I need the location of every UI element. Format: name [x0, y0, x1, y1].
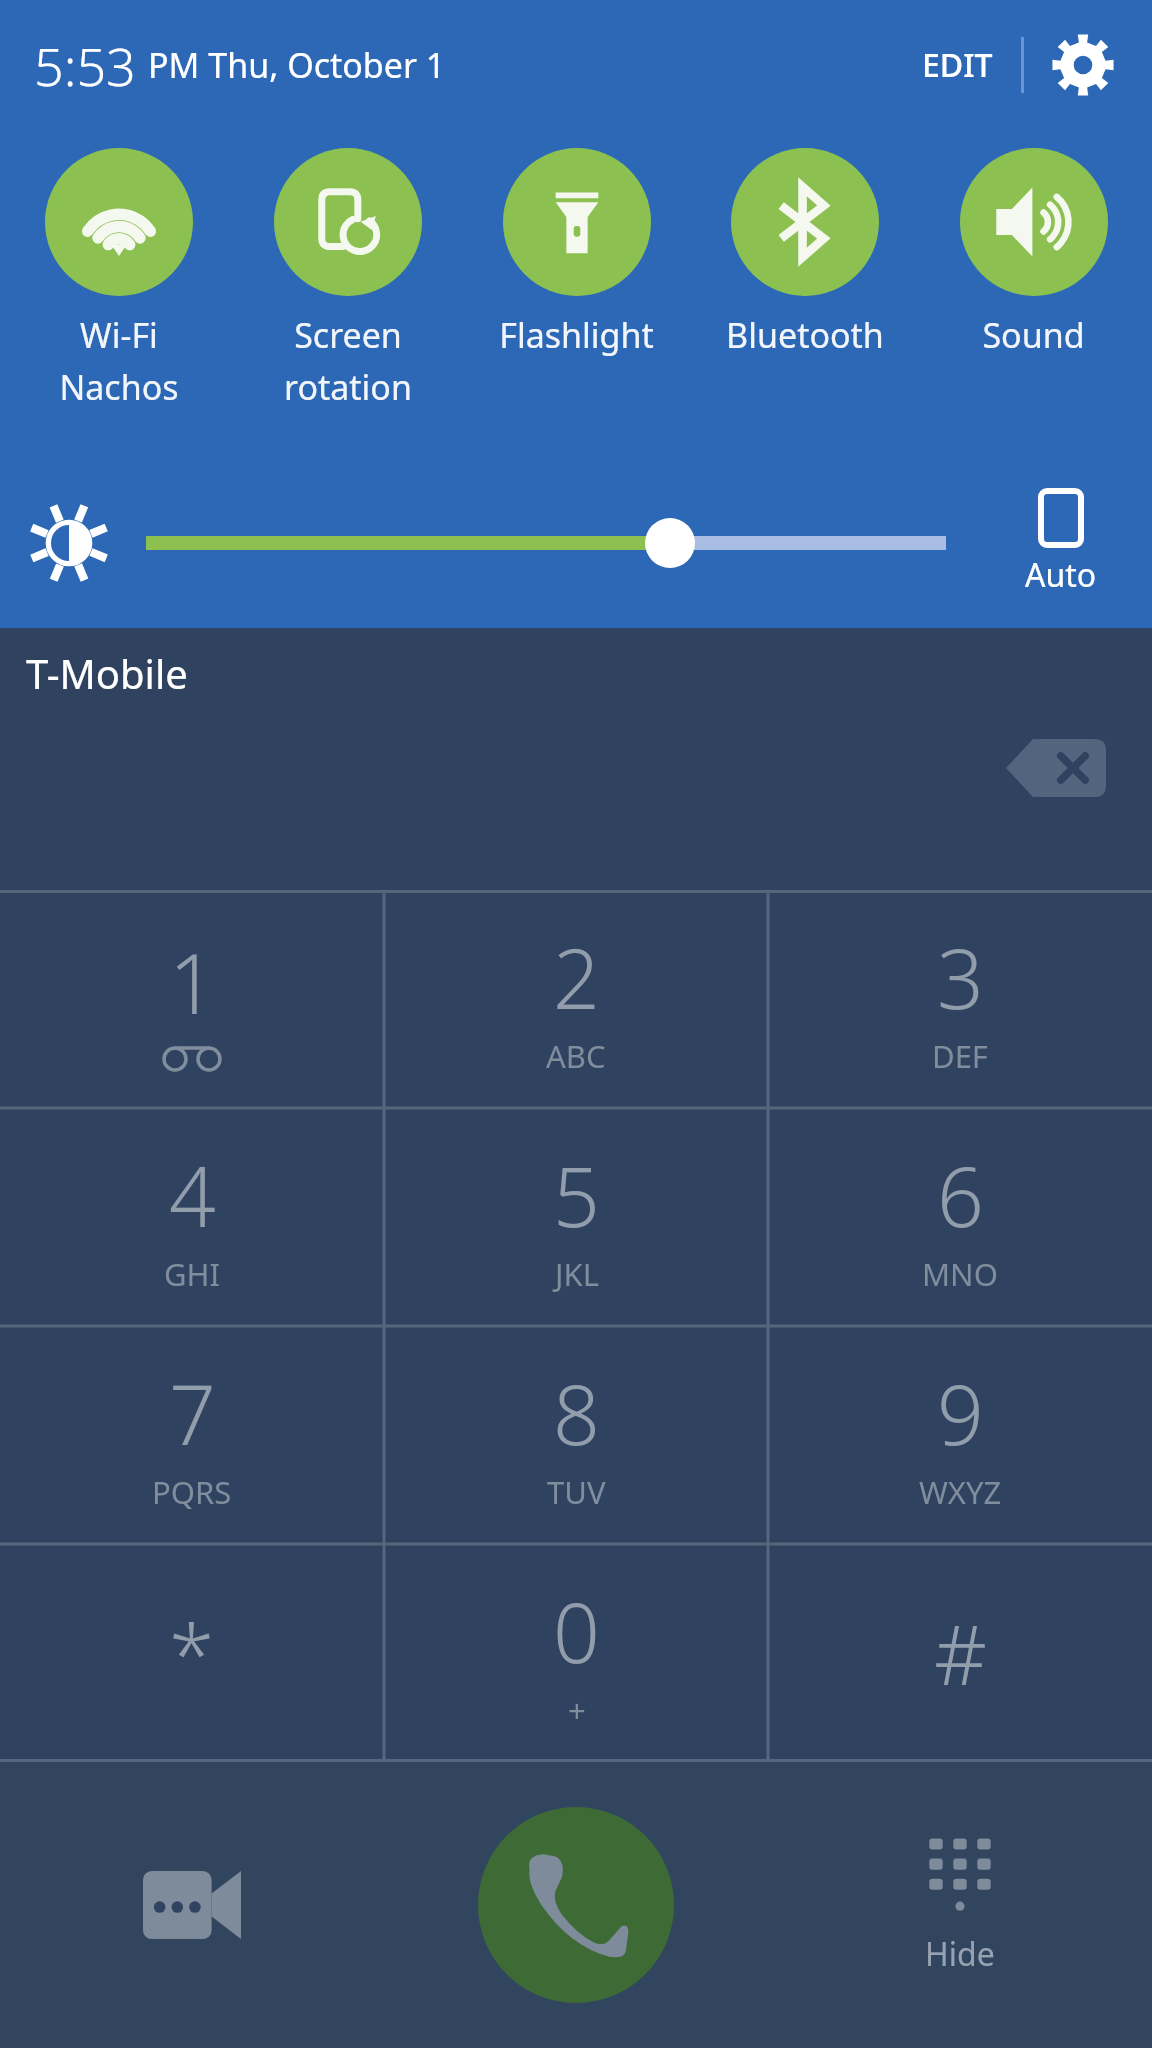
button[interactable]: Wi-Fi [16, 148, 221, 410]
staticText: DEF [932, 1035, 988, 1077]
staticText: Auto [1025, 553, 1097, 597]
staticText: rotation [284, 364, 412, 410]
staticText: # [934, 1597, 987, 1709]
button[interactable]: * [0, 1544, 384, 1762]
staticText: 0 [553, 1575, 600, 1687]
staticText: Bluetooth [726, 312, 884, 358]
button[interactable]: 6 [768, 1108, 1152, 1326]
button[interactable]: Settings [1044, 26, 1122, 104]
staticText: JKL [555, 1253, 599, 1295]
staticText: 5:53 [34, 30, 136, 101]
staticText: 6 [937, 1139, 984, 1251]
button[interactable]: Auto [986, 489, 1136, 597]
button[interactable]: 4 [0, 1108, 384, 1326]
button[interactable]: 8 [384, 1326, 768, 1544]
staticText: ABC [546, 1035, 606, 1077]
button[interactable]: Video call [0, 1762, 384, 2048]
button[interactable]: 7 [0, 1326, 384, 1544]
staticText: Sound [982, 312, 1085, 358]
staticText: 5 [553, 1139, 600, 1251]
staticText: Screen [294, 312, 402, 358]
button[interactable]: 1 [0, 890, 384, 1108]
staticText: 9 [937, 1357, 984, 1469]
staticText: 4 [169, 1139, 216, 1251]
staticText: EDIT [922, 43, 993, 87]
button[interactable]: Backspace [996, 728, 1116, 808]
staticText: 2 [553, 921, 600, 1033]
other: Brightness [30, 504, 108, 582]
staticText: 1 [169, 926, 216, 1038]
button[interactable]: 2 [384, 890, 768, 1108]
button[interactable]: EDIT [908, 33, 1007, 97]
staticText: 3 [937, 921, 984, 1033]
button[interactable]: 9 [768, 1326, 1152, 1544]
button[interactable]: 5 [384, 1108, 768, 1326]
staticText: * [169, 1597, 215, 1709]
button[interactable]: Screen [245, 148, 450, 410]
button[interactable]: Sound [931, 148, 1136, 358]
staticText: Hide [925, 1932, 995, 1976]
staticText: PQRS [152, 1471, 232, 1513]
button[interactable]: Call [478, 1807, 674, 2003]
staticText: GHI [164, 1253, 221, 1295]
staticText: Wi-Fi [80, 312, 158, 358]
staticText: + [568, 1689, 586, 1731]
button[interactable]: Hide [768, 1762, 1152, 2048]
staticText: 7 [169, 1357, 216, 1469]
button[interactable]: # [768, 1544, 1152, 1762]
staticText: TUV [547, 1471, 606, 1513]
button[interactable]: Bluetooth [702, 148, 907, 358]
staticText: T-Mobile [26, 646, 188, 700]
button[interactable]: 3 [768, 890, 1152, 1108]
staticText: PM Thu, October 1 [148, 42, 446, 88]
staticText: 8 [553, 1357, 600, 1469]
button[interactable]: 0 [384, 1544, 768, 1762]
button[interactable] [146, 503, 946, 583]
staticText: Nachos [59, 364, 179, 410]
staticText: Flashlight [499, 312, 654, 358]
staticText: WXYZ [919, 1471, 1002, 1513]
staticText: MNO [922, 1253, 998, 1295]
button[interactable]: Flashlight [474, 148, 679, 358]
